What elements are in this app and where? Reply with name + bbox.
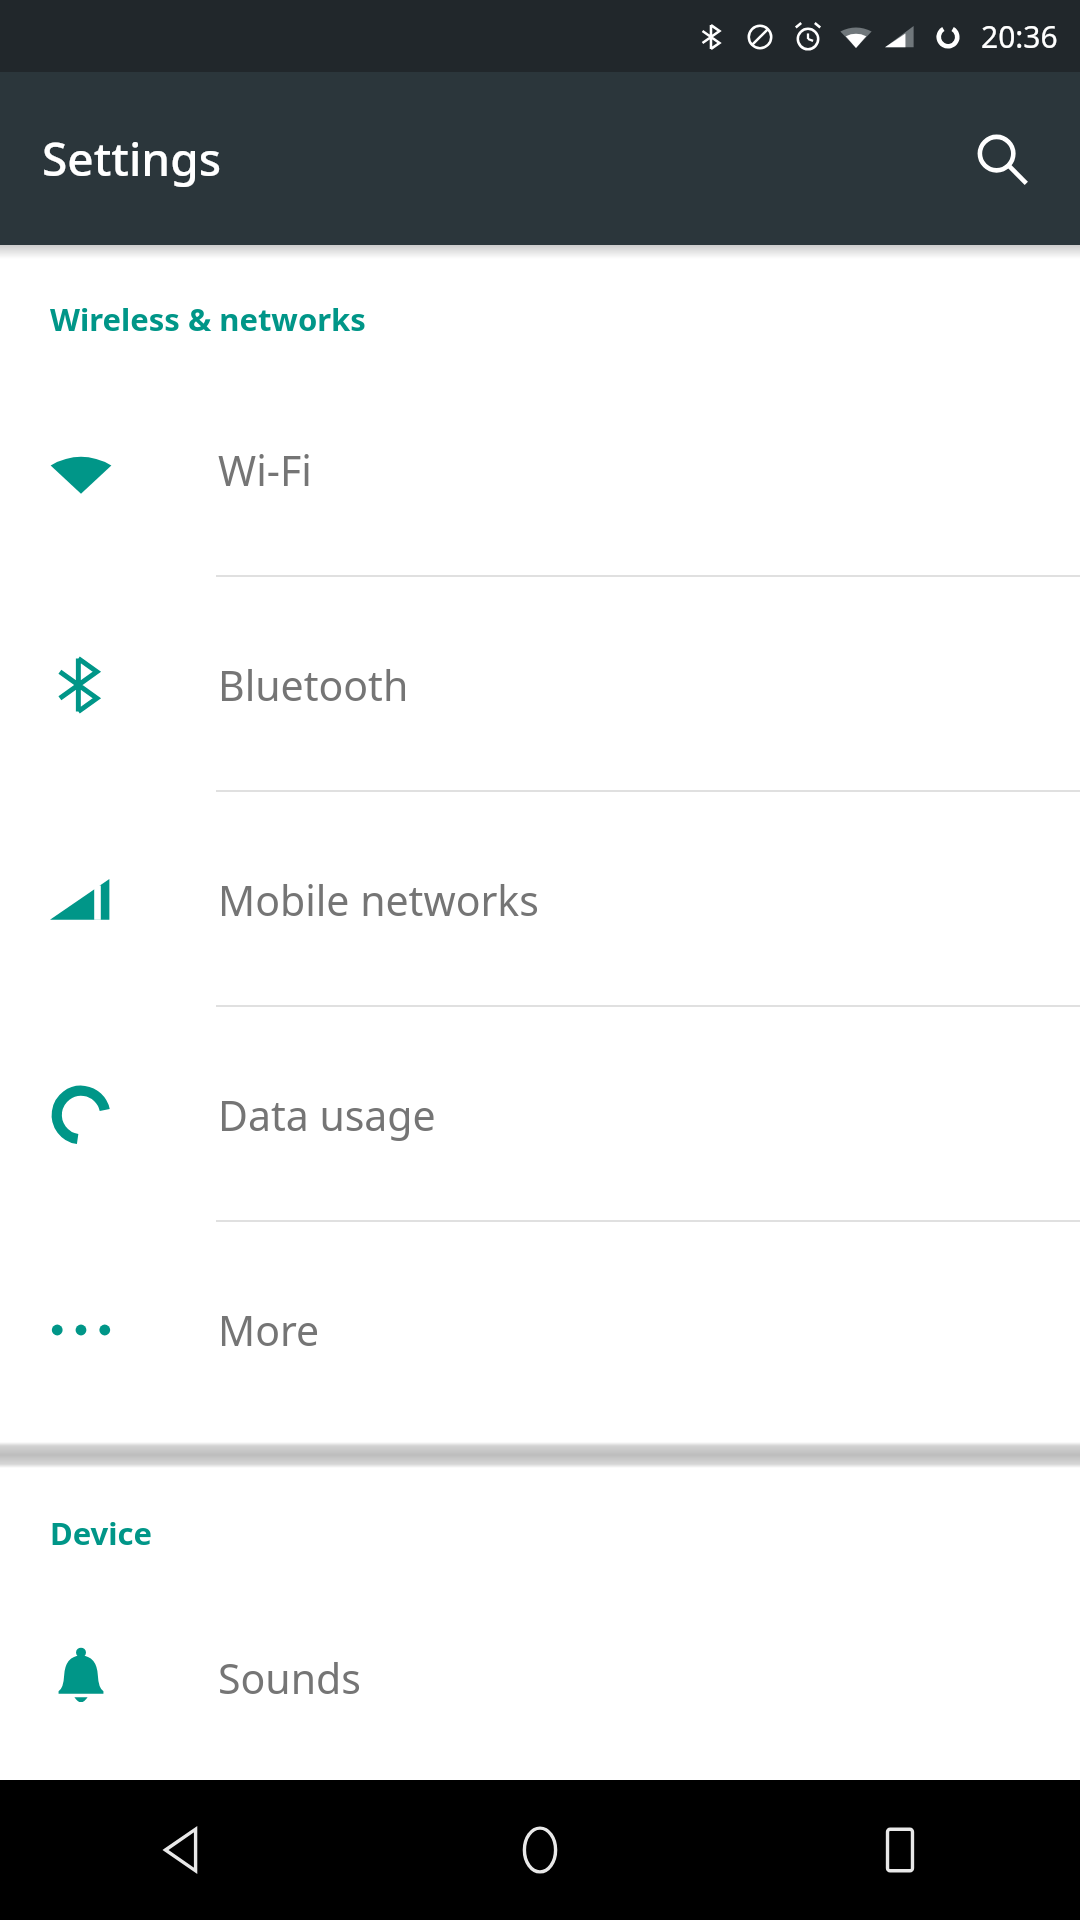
staticText: Sounds: [218, 1650, 361, 1706]
staticText: Mobile networks: [218, 872, 539, 928]
button[interactable]: Back: [0, 1780, 360, 1920]
button[interactable]: Sounds: [0, 1576, 1080, 1780]
staticText: Bluetooth: [218, 657, 409, 713]
button[interactable]: Home: [360, 1780, 720, 1920]
staticText: Data usage: [218, 1087, 436, 1143]
staticText: Wireless & networks: [50, 298, 366, 340]
staticText: More: [218, 1302, 320, 1358]
button[interactable]: Search: [954, 111, 1050, 207]
button[interactable]: Mobile networks: [0, 792, 1080, 1007]
staticText: 20:36: [981, 16, 1058, 57]
button[interactable]: Bluetooth: [0, 577, 1080, 792]
staticText: Device: [50, 1512, 153, 1554]
button[interactable]: Wi-Fi: [0, 362, 1080, 577]
button[interactable]: Data usage: [0, 1007, 1080, 1222]
staticText: Settings: [42, 127, 222, 190]
button[interactable]: More: [0, 1222, 1080, 1437]
button[interactable]: Recents: [720, 1780, 1080, 1920]
staticText: Wi-Fi: [218, 442, 312, 498]
